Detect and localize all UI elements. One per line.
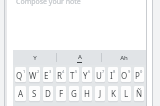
button[interactable]: D <box>42 85 54 102</box>
staticText: Ñ <box>136 88 143 99</box>
staticText: A <box>18 88 24 99</box>
button[interactable]: Q <box>14 66 27 83</box>
staticText: U <box>96 70 102 81</box>
staticText: I <box>110 70 113 81</box>
button[interactable]: Y <box>13 50 56 65</box>
staticText: P <box>135 70 140 81</box>
staticText: 7 <box>102 69 105 74</box>
staticText: K <box>111 88 116 99</box>
button[interactable]: G <box>68 85 80 102</box>
staticText: 1 <box>23 69 26 74</box>
button[interactable]: H <box>81 85 93 102</box>
button[interactable]: S <box>28 85 41 102</box>
button[interactable]: Ah <box>102 50 146 65</box>
button[interactable]: Compose your note <box>13 0 146 50</box>
staticText: Q <box>16 70 23 81</box>
button[interactable]: P <box>133 66 145 83</box>
button[interactable]: F <box>55 85 67 102</box>
staticText: L <box>124 88 129 99</box>
staticText: F <box>59 88 64 99</box>
staticText: Y <box>83 70 88 81</box>
staticText: D <box>45 88 51 99</box>
button[interactable]: O <box>120 66 132 83</box>
staticText: 2 <box>37 69 40 74</box>
staticText: Ah <box>120 54 128 62</box>
button[interactable]: W <box>28 66 41 83</box>
staticText: 6 <box>88 69 91 74</box>
staticText: O <box>121 70 128 81</box>
button[interactable]: U <box>94 66 106 83</box>
button[interactable]: Y <box>81 66 93 83</box>
staticText: 3 <box>49 69 52 74</box>
staticText: R <box>57 70 62 81</box>
button[interactable]: A <box>57 50 101 65</box>
button[interactable]: J <box>94 85 106 102</box>
staticText: T <box>70 70 75 81</box>
staticText: Y <box>33 54 37 62</box>
staticText: 9 <box>128 69 131 74</box>
staticText: G <box>71 88 77 99</box>
staticText: E <box>44 70 49 81</box>
staticText: 0 <box>140 69 143 74</box>
staticText: 8 <box>113 69 116 74</box>
staticText: J <box>99 88 102 99</box>
button[interactable]: T <box>68 66 80 83</box>
button[interactable]: R <box>55 66 67 83</box>
staticText: 4 <box>62 69 65 74</box>
staticText: 5 <box>75 69 78 74</box>
staticText: S <box>32 88 37 99</box>
staticText: H <box>84 88 90 99</box>
button[interactable]: I <box>107 66 119 83</box>
button[interactable]: A <box>14 85 27 102</box>
button[interactable]: Ñ <box>133 85 145 102</box>
button[interactable]: L <box>120 85 132 102</box>
staticText: A <box>78 53 82 61</box>
button[interactable]: E <box>42 66 54 83</box>
staticText: W <box>29 70 37 81</box>
staticText: Compose your note <box>16 0 81 7</box>
button[interactable]: K <box>107 85 119 102</box>
